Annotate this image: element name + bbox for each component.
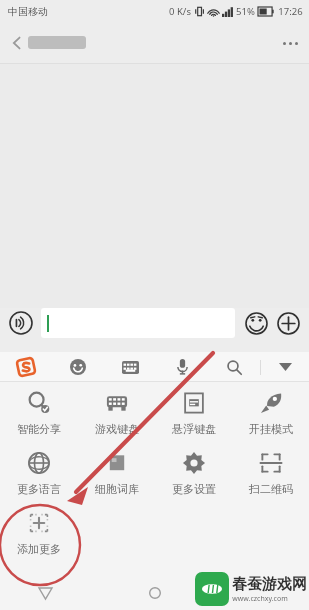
staticText: 51% — [236, 5, 255, 18]
staticText: 更多设置 — [172, 482, 216, 496]
button[interactable]: More options — [271, 24, 309, 62]
button[interactable]: 智能分享 — [0, 382, 78, 442]
staticText: 17:26 — [278, 5, 303, 18]
button[interactable]: Back — [30, 578, 60, 608]
staticText: www.czchxy.com — [232, 594, 288, 604]
button[interactable]: Emoji — [243, 310, 269, 336]
button[interactable]: Voice input — [8, 310, 34, 336]
button[interactable]: Sogou — [0, 352, 52, 382]
button[interactable]: 扫二维码 — [232, 442, 309, 502]
button[interactable]: Collapse — [261, 352, 309, 382]
button[interactable]: Expression — [52, 352, 104, 382]
button[interactable]: 更多设置 — [155, 442, 232, 502]
button[interactable]: Voice — [156, 352, 208, 382]
button[interactable]: Back — [0, 26, 34, 60]
button[interactable]: Home — [140, 578, 170, 608]
button[interactable]: 悬浮键盘 — [155, 382, 232, 442]
staticText: 游戏键盘 — [95, 422, 139, 436]
staticText: 春蚕游戏网 — [232, 575, 307, 594]
staticText: 添加更多 — [17, 542, 61, 556]
button[interactable]: 细胞词库 — [78, 442, 155, 502]
button[interactable]: 游戏键盘 — [78, 382, 155, 442]
button[interactable]: Keyboard — [104, 352, 156, 382]
staticText: 细胞词库 — [95, 482, 139, 496]
staticText: 开挂模式 — [249, 422, 293, 436]
button[interactable]: More functions — [275, 310, 301, 336]
button[interactable] — [41, 308, 235, 338]
button[interactable]: Search — [208, 352, 260, 382]
button[interactable]: 更多语言 — [0, 442, 78, 502]
button[interactable]: 开挂模式 — [232, 382, 309, 442]
button[interactable]: 添加更多 — [0, 502, 77, 562]
staticText: 智能分享 — [17, 422, 61, 436]
staticText: 中国移动 — [8, 5, 48, 18]
staticText: 悬浮键盘 — [172, 422, 216, 436]
staticText: 扫二维码 — [249, 482, 293, 496]
staticText: 更多语言 — [17, 482, 61, 496]
staticText: 0 K/s — [169, 5, 191, 18]
